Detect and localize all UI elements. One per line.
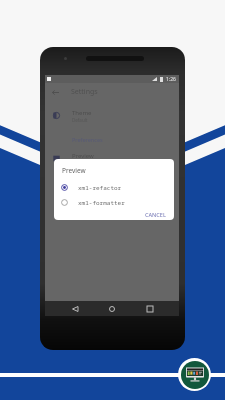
staticText: CANCEL — [145, 211, 166, 218]
staticText: Theme — [72, 109, 92, 117]
staticText: 1:26 — [166, 76, 176, 83]
button[interactable]: Home — [104, 301, 120, 316]
staticText: Preview — [72, 152, 94, 160]
button[interactable]: Theme — [45, 109, 179, 122]
button[interactable]: Navigate up — [50, 87, 60, 97]
staticText: Preferences — [72, 136, 103, 143]
staticText: Default — [72, 117, 88, 122]
staticText: xml-formatter — [78, 199, 125, 207]
button[interactable]: Recent apps — [142, 301, 158, 316]
button[interactable]: CANCEL — [140, 209, 171, 220]
button[interactable]: xml-formatter — [54, 196, 174, 209]
button[interactable]: Preview — [45, 152, 179, 165]
staticText: xml-refactor — [78, 184, 122, 192]
button[interactable]: xml-refactor — [54, 181, 174, 194]
staticText: Settings — [71, 87, 98, 97]
button[interactable]: Back — [67, 301, 83, 316]
staticText: Preview — [62, 166, 86, 175]
button[interactable]: Company logo — [178, 358, 211, 391]
